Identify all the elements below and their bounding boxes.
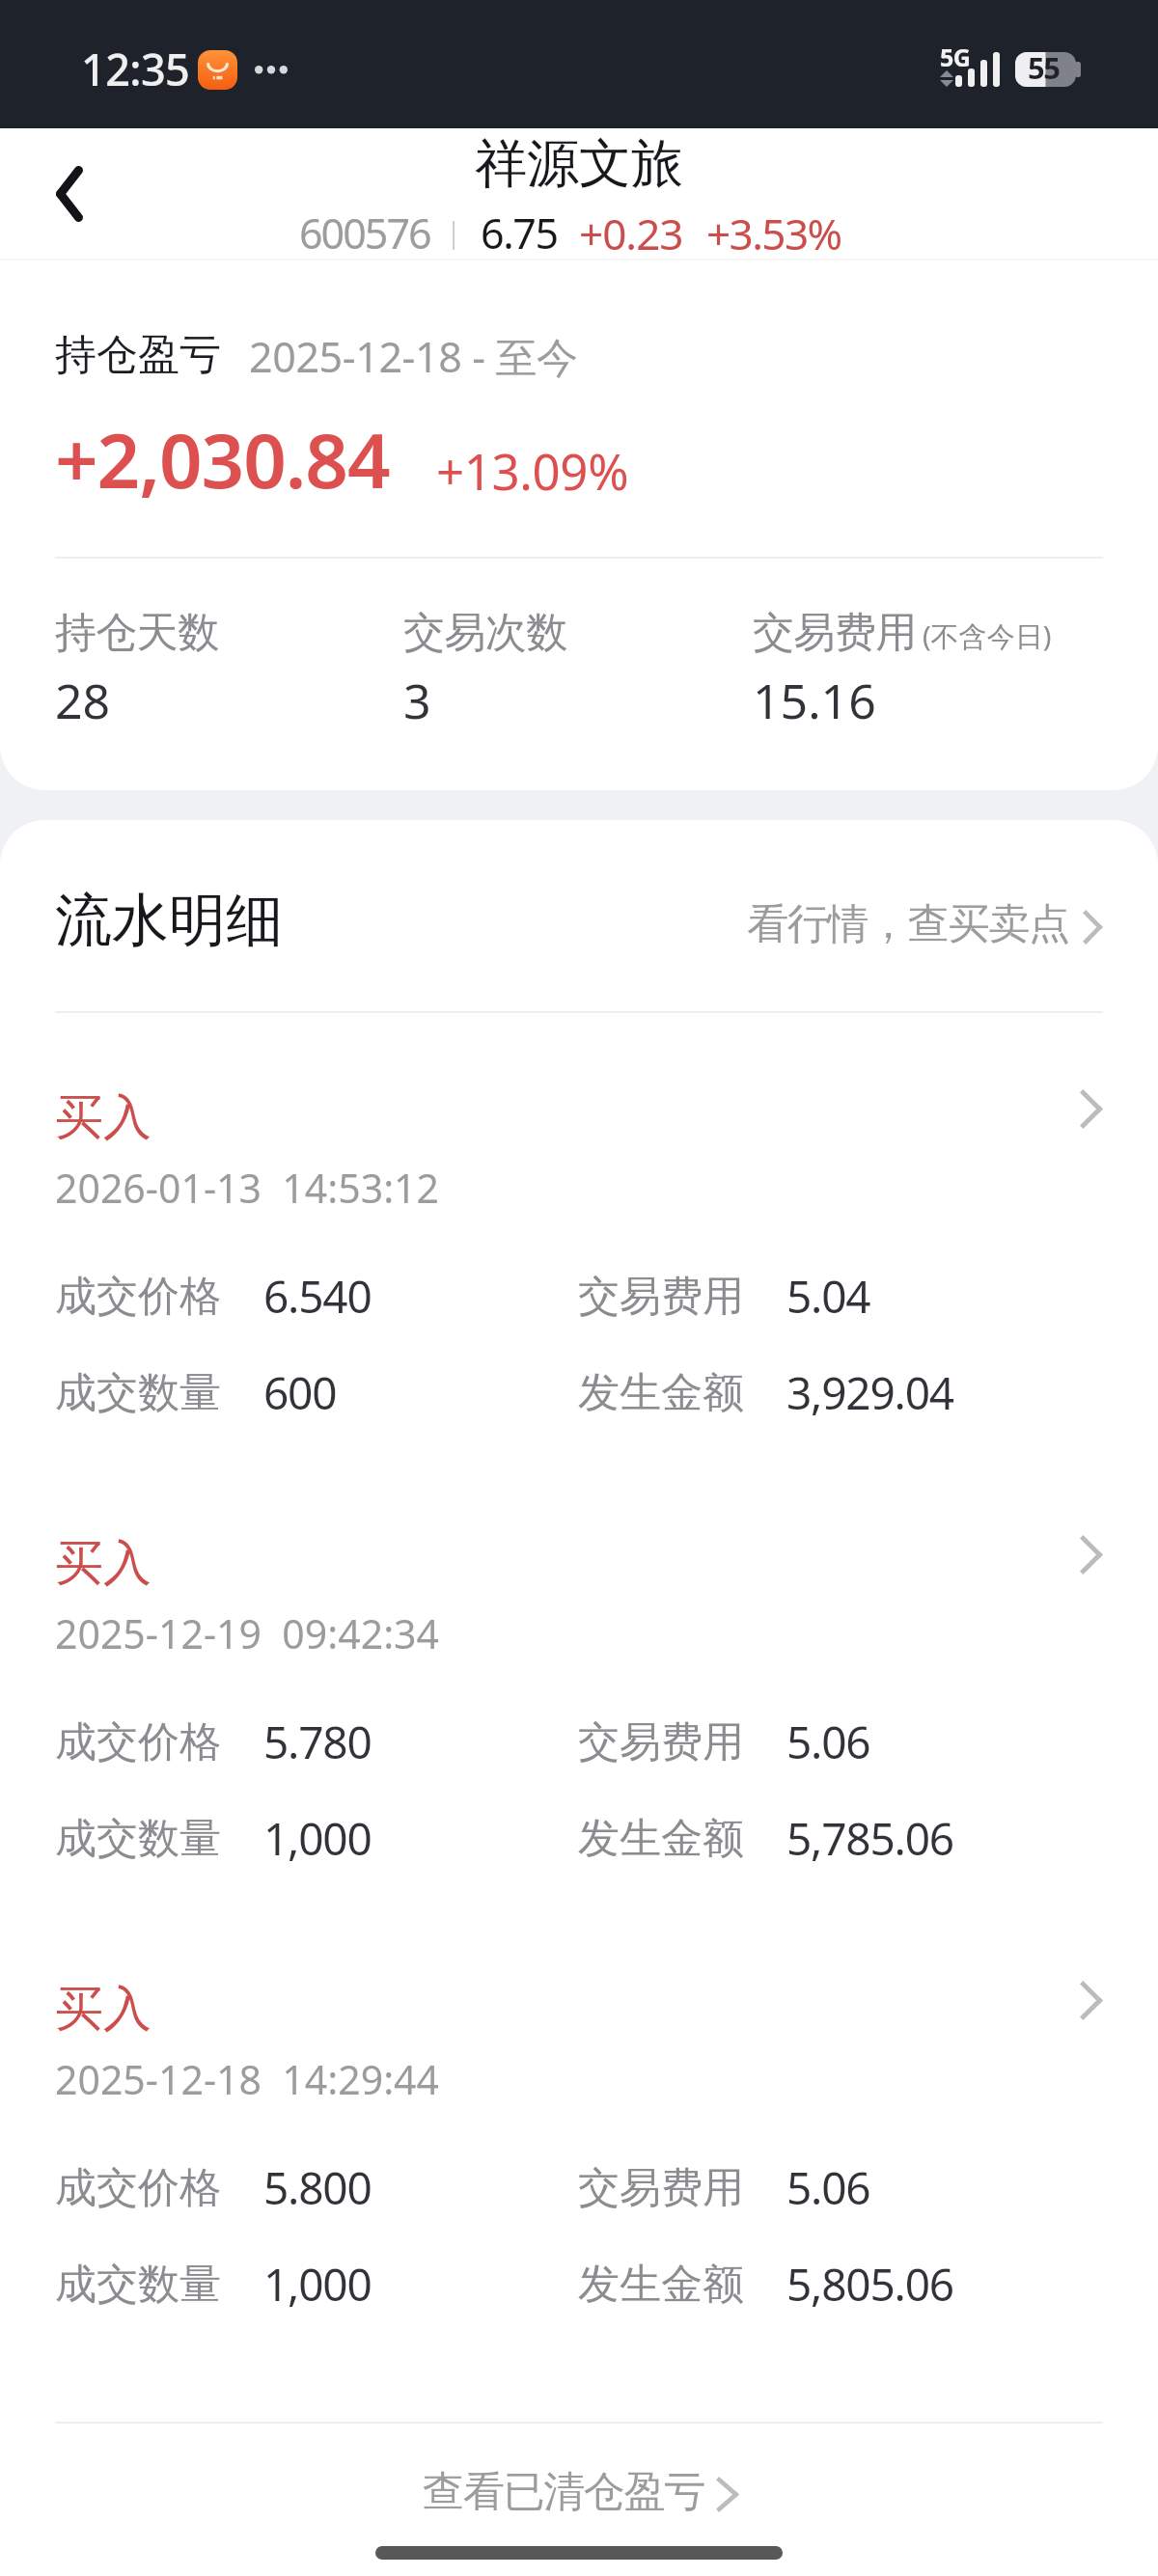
staticText: 成交价格 bbox=[55, 1271, 221, 1323]
staticText: 交易费用 bbox=[753, 607, 917, 659]
staticText: 15.16 bbox=[753, 668, 876, 733]
staticText: 持仓天数 bbox=[55, 607, 219, 659]
staticText: 28 bbox=[55, 668, 111, 733]
staticText: 看行情，查买卖点 bbox=[747, 898, 1069, 950]
staticText: 买入 bbox=[55, 1979, 152, 2040]
staticText: 2025-12-18 14:29:44 bbox=[55, 2052, 440, 2106]
staticText: 成交价格 bbox=[55, 1716, 221, 1768]
staticText: 成交数量 bbox=[55, 2259, 221, 2311]
staticText: 买入 bbox=[55, 1533, 152, 1594]
staticText: 12:35 bbox=[81, 40, 190, 98]
staticText: 5.06 bbox=[786, 2157, 870, 2218]
staticText: 买入 bbox=[55, 1087, 152, 1148]
staticText: 发生金额 bbox=[578, 1813, 744, 1865]
staticText: 交易费用 bbox=[578, 1271, 744, 1323]
button[interactable]: 买入 bbox=[0, 1092, 1158, 1478]
staticText: +13.09% bbox=[436, 437, 629, 504]
button[interactable]: 买入 bbox=[0, 1984, 1158, 2370]
staticText: 5.04 bbox=[786, 1266, 870, 1327]
staticText: 3,929.04 bbox=[786, 1362, 953, 1423]
staticText: +0.23 bbox=[579, 205, 683, 262]
staticText: 1,000 bbox=[263, 1808, 372, 1869]
staticText: 祥源文旅 bbox=[475, 131, 683, 197]
staticText: 1,000 bbox=[263, 2254, 372, 2315]
staticText: 发生金额 bbox=[578, 2259, 744, 2311]
staticText: 600576 bbox=[299, 205, 430, 261]
staticText: 成交数量 bbox=[55, 1367, 221, 1419]
staticText: 5,785.06 bbox=[786, 1808, 953, 1869]
button[interactable]: 看行情，查买卖点 bbox=[733, 878, 1110, 959]
staticText: 交易费用 bbox=[578, 2162, 744, 2214]
staticText: 5G bbox=[940, 41, 971, 73]
staticText: 5.06 bbox=[786, 1712, 870, 1772]
staticText: 5,805.06 bbox=[786, 2254, 953, 2315]
staticText: 成交价格 bbox=[55, 2162, 221, 2214]
staticText: 6.540 bbox=[263, 1266, 372, 1327]
staticText: 5.780 bbox=[263, 1712, 372, 1772]
staticText: 持仓盈亏 bbox=[55, 329, 221, 381]
staticText: 3 bbox=[403, 668, 431, 733]
staticText: 交易费用 bbox=[578, 1716, 744, 1768]
staticText: 2026-01-13 14:53:12 bbox=[55, 1161, 440, 1215]
staticText: 600 bbox=[263, 1362, 337, 1423]
staticText: 成交数量 bbox=[55, 1813, 221, 1865]
staticText: 发生金额 bbox=[578, 1367, 744, 1419]
staticText: 流水明细 bbox=[55, 885, 283, 956]
staticText: 2025-12-18 - 至今 bbox=[249, 328, 578, 385]
button[interactable]: 查看已清仓盈亏 bbox=[0, 2424, 1158, 2559]
staticText: 5.800 bbox=[263, 2157, 372, 2218]
staticText: 2025-12-19 09:42:34 bbox=[55, 1606, 440, 1660]
staticText: +2,030.84 bbox=[55, 408, 390, 510]
staticText: 交易次数 bbox=[403, 607, 567, 659]
staticText: 55 bbox=[1028, 47, 1060, 88]
staticText: 查看已清仓盈亏 bbox=[423, 2466, 704, 2518]
staticText: +3.53% bbox=[706, 205, 841, 262]
button[interactable]: 买入 bbox=[0, 1538, 1158, 1924]
staticText: 6.75 bbox=[481, 205, 558, 261]
staticText: (不含今日) bbox=[923, 617, 1052, 655]
button[interactable]: Back bbox=[27, 151, 112, 236]
